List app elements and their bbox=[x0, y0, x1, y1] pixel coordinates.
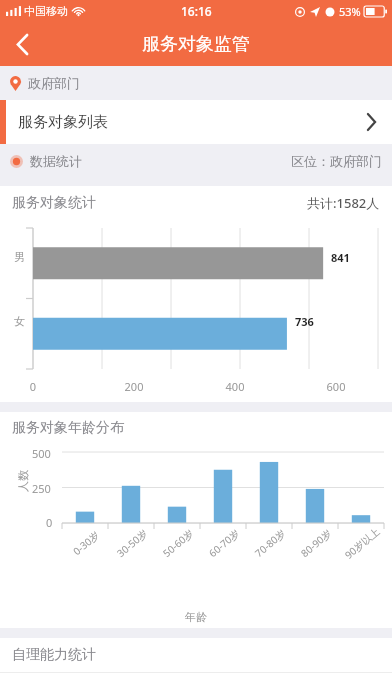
staticText: 0 bbox=[17, 379, 49, 394]
staticText: 30-50岁 bbox=[110, 523, 154, 563]
staticText: 500 bbox=[32, 446, 51, 461]
staticText: 0 bbox=[46, 515, 53, 530]
staticText: 自理能力统计 bbox=[12, 646, 96, 664]
staticText: 200 bbox=[118, 379, 150, 394]
staticText: 中国移动 bbox=[24, 4, 68, 18]
staticText: 数据统计 bbox=[30, 153, 82, 169]
staticText: 服务对象监管 bbox=[142, 33, 250, 56]
staticText: 60-70岁 bbox=[202, 523, 246, 563]
staticText: 16:16 bbox=[181, 3, 212, 19]
staticText: 736 bbox=[295, 314, 314, 329]
staticText: 区位：政府部门 bbox=[291, 153, 382, 169]
staticText: 服务对象年龄分布 bbox=[12, 419, 124, 437]
staticText: 服务对象列表 bbox=[18, 113, 108, 132]
staticText: 政府部门 bbox=[28, 75, 80, 91]
staticText: 人数 bbox=[16, 470, 30, 492]
staticText: 600 bbox=[320, 379, 352, 394]
staticText: 841 bbox=[331, 250, 350, 265]
staticText: 服务对象统计 bbox=[12, 194, 96, 212]
staticText: 80-90岁 bbox=[294, 523, 338, 563]
staticText: 0-30岁 bbox=[64, 523, 108, 563]
staticText: 70-80岁 bbox=[248, 523, 292, 563]
staticText: 女 bbox=[14, 314, 25, 328]
staticText: 年龄 bbox=[185, 610, 207, 624]
staticText: 男 bbox=[14, 250, 25, 264]
staticText: 250 bbox=[32, 481, 51, 496]
staticText: 53% bbox=[339, 4, 361, 19]
staticText: 50-60岁 bbox=[156, 523, 200, 563]
staticText: 90岁以上 bbox=[340, 523, 384, 563]
button[interactable]: 服务对象列表 bbox=[0, 100, 392, 144]
staticText: 共计:1582人 bbox=[307, 194, 380, 212]
staticText: 400 bbox=[219, 379, 251, 394]
button[interactable]: Back bbox=[0, 22, 44, 66]
